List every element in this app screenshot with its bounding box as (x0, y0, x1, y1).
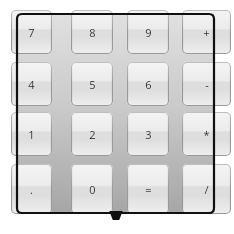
button[interactable]: 7 (11, 10, 52, 54)
button[interactable]: 9 (127, 10, 169, 54)
staticText: 3 (145, 127, 152, 142)
staticText: - (205, 77, 209, 92)
staticText: 5 (89, 77, 96, 92)
staticText: 6 (145, 77, 152, 92)
button[interactable]: + (182, 10, 231, 54)
staticText: 9 (145, 25, 152, 40)
button[interactable]: 3 (127, 112, 169, 156)
staticText: 2 (89, 127, 96, 142)
staticText: 8 (89, 25, 96, 40)
staticText: / (204, 182, 209, 197)
staticText: 7 (28, 25, 35, 40)
staticText: . (30, 182, 33, 197)
staticText: 0 (89, 182, 96, 197)
button[interactable]: 4 (11, 62, 52, 106)
button[interactable]: 1 (11, 112, 52, 156)
staticText: * (203, 127, 210, 142)
button[interactable]: = (127, 164, 169, 214)
staticText: + (203, 25, 210, 40)
button[interactable]: / (182, 164, 231, 214)
button[interactable]: 0 (71, 164, 113, 214)
button[interactable]: - (182, 62, 231, 106)
button[interactable]: 5 (71, 62, 113, 106)
button[interactable]: * (182, 112, 231, 156)
button[interactable]: 6 (127, 62, 169, 106)
staticText: 4 (28, 77, 35, 92)
button[interactable]: 2 (71, 112, 113, 156)
button[interactable]: . (11, 164, 52, 214)
staticText: 1 (28, 127, 35, 142)
staticText: = (145, 182, 152, 197)
button[interactable]: 8 (71, 10, 113, 54)
